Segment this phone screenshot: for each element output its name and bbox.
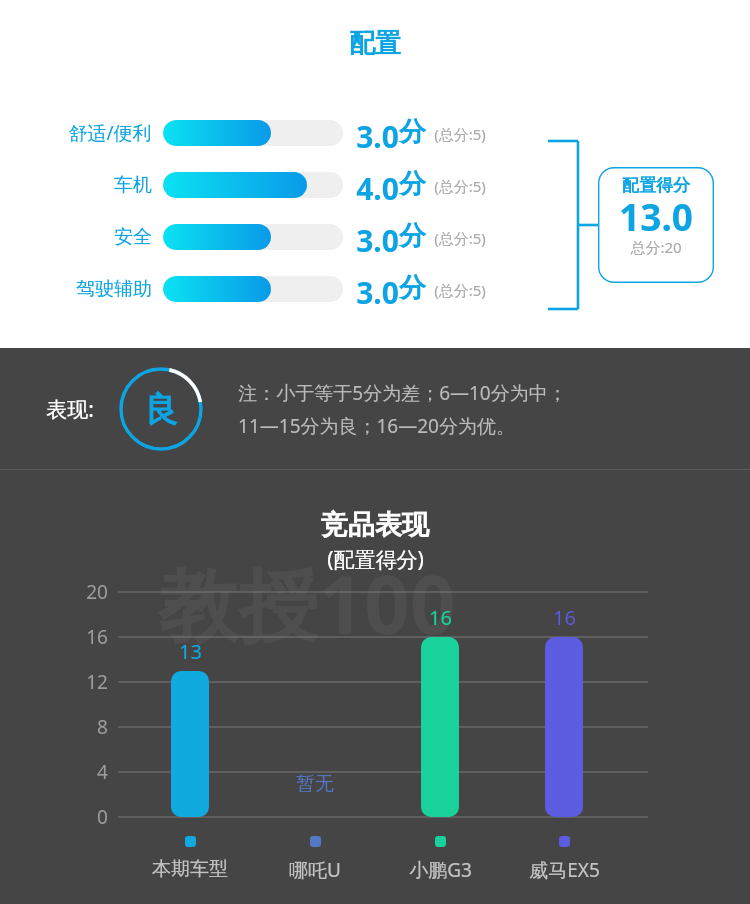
staticText: 表现: [46, 395, 94, 424]
staticText: 配置 [349, 27, 401, 60]
staticText: 安全 [114, 225, 152, 249]
staticText: 3.0 [356, 220, 399, 254]
staticText: 教授100 [158, 548, 456, 657]
staticText: 16 [429, 604, 452, 631]
staticText: 注：小于等于5分为差；6—10分为中； [238, 380, 567, 406]
staticText: 哪吒U [289, 857, 341, 883]
staticText: 3.0 [356, 116, 399, 150]
staticText: (总分:5) [434, 280, 486, 300]
staticText: (总分:5) [434, 228, 486, 248]
staticText: 12 [86, 669, 108, 695]
staticText: 13.0 [619, 191, 693, 241]
button[interactable]: 13 [135, 470, 245, 904]
staticText: 驾驶辅助 [76, 277, 152, 301]
staticText: 良 [144, 388, 178, 431]
staticText: 8 [97, 714, 108, 740]
staticText: 配置得分 [622, 175, 690, 196]
staticText: (总分:5) [434, 124, 486, 144]
staticText: 4 [97, 759, 108, 785]
button[interactable]: 驾驶辅助 [0, 272, 750, 306]
staticText: 4.0 [356, 168, 399, 202]
button[interactable]: 16 [385, 470, 495, 904]
staticText: (总分:5) [434, 176, 486, 196]
staticText: 3.0 [356, 272, 399, 306]
button[interactable]: 舒适/便利 [0, 116, 750, 150]
staticText: 0 [97, 804, 108, 830]
staticText: 分 [399, 219, 426, 253]
staticText: 11—15分为良；16—20分为优。 [238, 413, 515, 439]
staticText: 暂无 [296, 772, 334, 796]
staticText: 车机 [114, 173, 152, 197]
staticText: 本期车型 [152, 857, 228, 881]
staticText: 分 [399, 115, 426, 149]
button[interactable]: 配置得分 [598, 167, 714, 283]
staticText: 16 [86, 624, 108, 650]
button[interactable]: 车机 [0, 168, 750, 202]
staticText: 舒适/便利 [68, 120, 152, 146]
staticText: 竞品表现 [321, 508, 429, 542]
staticText: 13 [179, 638, 202, 665]
button[interactable]: 暂无 [260, 470, 370, 904]
staticText: 小鹏G3 [409, 857, 472, 883]
staticText: 威马EX5 [529, 857, 600, 883]
staticText: 总分:20 [630, 237, 682, 257]
staticText: 20 [86, 579, 108, 605]
staticText: 分 [399, 167, 426, 201]
button[interactable]: 16 [509, 470, 619, 904]
other: 评级 良 [119, 367, 203, 451]
staticText: 16 [553, 604, 576, 631]
staticText: (配置得分) [327, 545, 424, 574]
staticText: 分 [399, 271, 426, 305]
button[interactable]: 安全 [0, 220, 750, 254]
